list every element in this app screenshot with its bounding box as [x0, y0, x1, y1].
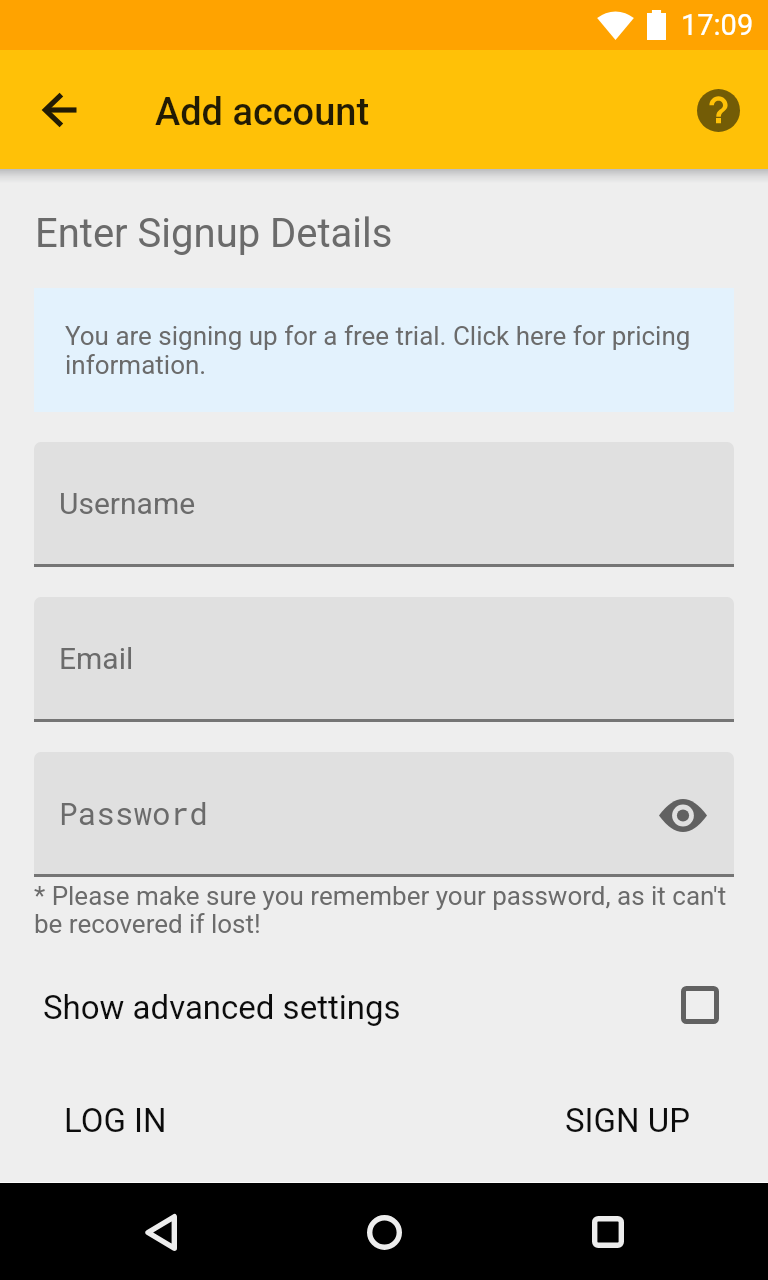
button[interactable]: Username: [34, 442, 734, 564]
staticText: Show advanced settings: [43, 988, 681, 1027]
button[interactable]: Home: [336, 1183, 432, 1279]
button[interactable]: Help: [677, 69, 759, 151]
button[interactable]: Recent apps: [560, 1183, 656, 1279]
staticText: Email: [59, 641, 134, 676]
staticText: You are signing up for a free trial. Cli…: [65, 321, 716, 380]
staticText: Username: [59, 486, 196, 521]
button[interactable]: Email: [34, 597, 734, 719]
staticText: LOG IN: [64, 1101, 167, 1140]
staticText: * Please make sure you remember your pas…: [34, 881, 738, 940]
staticText: Add account: [155, 90, 370, 135]
staticText: SIGN UP: [565, 1101, 690, 1140]
button[interactable]: Password: [34, 752, 734, 874]
button[interactable]: Back: [112, 1183, 208, 1279]
staticText: Password: [59, 793, 208, 834]
staticText: 17:09: [681, 8, 754, 42]
staticText: Enter Signup Details: [35, 210, 393, 257]
button[interactable]: You are signing up for a free trial. Cli…: [34, 288, 734, 412]
button[interactable]: Navigate up: [19, 70, 99, 150]
button[interactable]: SIGN UP: [539, 1085, 716, 1156]
button[interactable]: Show password: [655, 785, 711, 841]
button[interactable]: LOG IN: [38, 1085, 193, 1156]
button[interactable]: Show advanced settings: [0, 971, 768, 1043]
